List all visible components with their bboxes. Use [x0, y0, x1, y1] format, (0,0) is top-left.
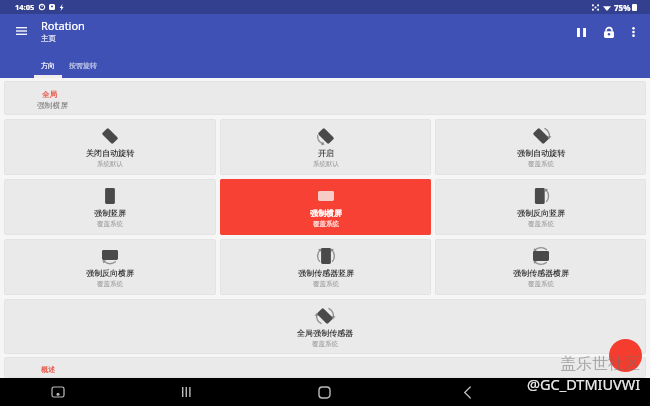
staticText: 覆盖系统 — [312, 340, 338, 348]
button[interactable]: 方向 — [34, 56, 62, 78]
staticText: 强制横屏 — [37, 100, 69, 110]
staticText: 强制反向横屏 — [86, 268, 134, 278]
staticText: 覆盖系统 — [97, 220, 123, 228]
button[interactable]: Home — [311, 378, 337, 406]
staticText: 14:05 — [15, 2, 35, 12]
button[interactable]: 强制竖屏 — [4, 179, 216, 235]
button[interactable]: 全局 — [4, 81, 646, 115]
button[interactable]: More options — [620, 20, 646, 44]
button[interactable]: Open navigation drawer — [8, 18, 34, 44]
staticText: 覆盖系统 — [97, 280, 123, 288]
button[interactable]: 关闭自动旋转 — [4, 119, 216, 175]
button[interactable]: 强制自动旋转 — [435, 119, 646, 175]
staticText: 系统默认 — [97, 160, 123, 168]
staticText: 强制自动旋转 — [517, 148, 565, 158]
button[interactable]: 强制传感器横屏 — [435, 239, 646, 295]
button[interactable]: 概述 — [4, 357, 646, 378]
staticText: 主页 — [41, 34, 56, 43]
button[interactable]: Screenshot — [45, 378, 71, 406]
staticText: 关闭自动旋转 — [86, 148, 134, 158]
button[interactable]: 强制反向竖屏 — [435, 179, 646, 235]
button[interactable]: Recent apps — [173, 378, 199, 406]
button[interactable]: 强制反向横屏 — [4, 239, 216, 295]
staticText: 全局强制传感器 — [297, 328, 353, 338]
button[interactable]: Lock rotation — [596, 20, 622, 44]
button[interactable]: 开启 — [220, 119, 431, 175]
staticText: 75% — [614, 2, 631, 13]
staticText: 强制竖屏 — [94, 208, 126, 218]
staticText: Rotation — [41, 18, 85, 33]
staticText: 系统默认 — [313, 160, 339, 168]
staticText: 强制传感器横屏 — [513, 268, 569, 278]
staticText: 盖乐世社区 — [560, 354, 640, 374]
button[interactable]: Add shortcut — [609, 339, 642, 372]
staticText: 概述 — [41, 365, 55, 374]
staticText: 强制横屏 — [310, 208, 342, 218]
button[interactable]: 强制横屏 — [220, 179, 431, 235]
button[interactable]: 全局强制传感器 — [4, 299, 646, 354]
staticText: 覆盖系统 — [313, 220, 339, 228]
staticText: 按需旋转 — [69, 61, 97, 70]
staticText: 方向 — [41, 61, 55, 70]
button[interactable]: 强制传感器竖屏 — [220, 239, 431, 295]
staticText: 强制反向竖屏 — [517, 208, 565, 218]
staticText: 覆盖系统 — [528, 220, 554, 228]
staticText: 覆盖系统 — [528, 160, 554, 168]
staticText: 全局 — [42, 90, 57, 99]
staticText: 强制传感器竖屏 — [298, 268, 354, 278]
button[interactable]: Back — [454, 378, 480, 406]
staticText: 覆盖系统 — [313, 280, 339, 288]
staticText: 开启 — [318, 148, 334, 158]
staticText: @GC_DTMIUVWI — [527, 374, 641, 394]
staticText: 覆盖系统 — [528, 280, 554, 288]
button[interactable]: Pause — [568, 20, 594, 44]
button[interactable]: 按需旋转 — [62, 56, 104, 78]
